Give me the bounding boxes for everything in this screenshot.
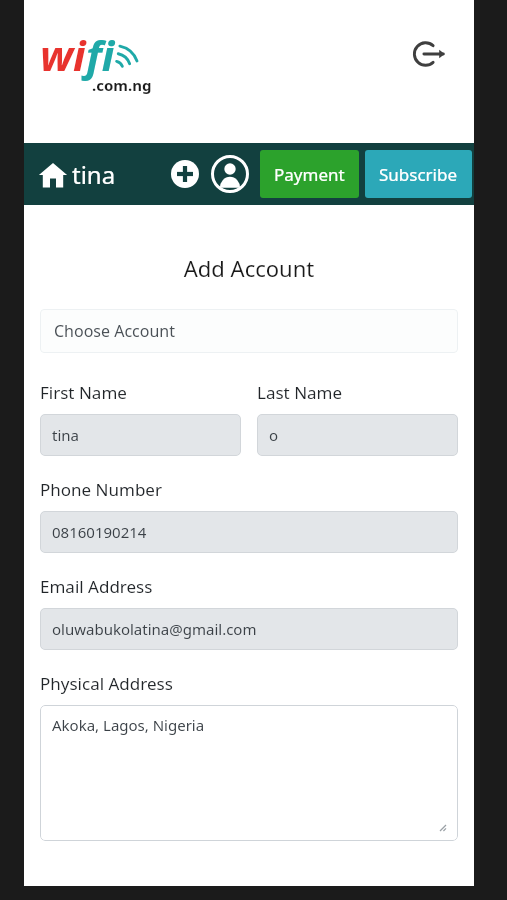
button[interactable]: tina: [40, 414, 241, 456]
staticText: tina: [52, 425, 79, 445]
staticText: Email Address: [40, 575, 153, 598]
button[interactable]: Akoka, Lagos, Nigeria: [40, 705, 458, 841]
staticText: wi: [40, 26, 86, 83]
staticText: tina: [72, 158, 116, 191]
button[interactable]: 08160190214: [40, 511, 458, 553]
staticText: First Name: [40, 381, 127, 404]
staticText: Phone Number: [40, 478, 162, 501]
staticText: Last Name: [257, 381, 343, 404]
staticText: oluwabukolatina@gmail.com: [52, 619, 257, 639]
staticText: Subscribe: [379, 163, 458, 186]
staticText: Add Account: [40, 253, 458, 283]
staticText: Akoka, Lagos, Nigeria: [52, 715, 205, 735]
button[interactable]: Choose Account: [40, 309, 458, 353]
button[interactable]: Payment: [260, 150, 359, 198]
staticText: fi: [86, 26, 115, 83]
staticText: Choose Account: [54, 320, 176, 342]
button[interactable]: tina: [34, 158, 120, 191]
staticText: o: [269, 425, 279, 445]
staticText: .com.ng: [92, 75, 152, 95]
staticText: 08160190214: [52, 522, 147, 542]
button[interactable]: oluwabukolatina@gmail.com: [40, 608, 458, 650]
staticText: Payment: [274, 163, 345, 186]
button[interactable]: Subscribe: [365, 150, 472, 198]
button[interactable]: o: [257, 414, 458, 456]
button[interactable]: Logout: [406, 31, 452, 77]
button[interactable]: Add: [168, 157, 202, 191]
button[interactable]: Profile: [210, 154, 250, 194]
staticText: Physical Address: [40, 672, 173, 695]
